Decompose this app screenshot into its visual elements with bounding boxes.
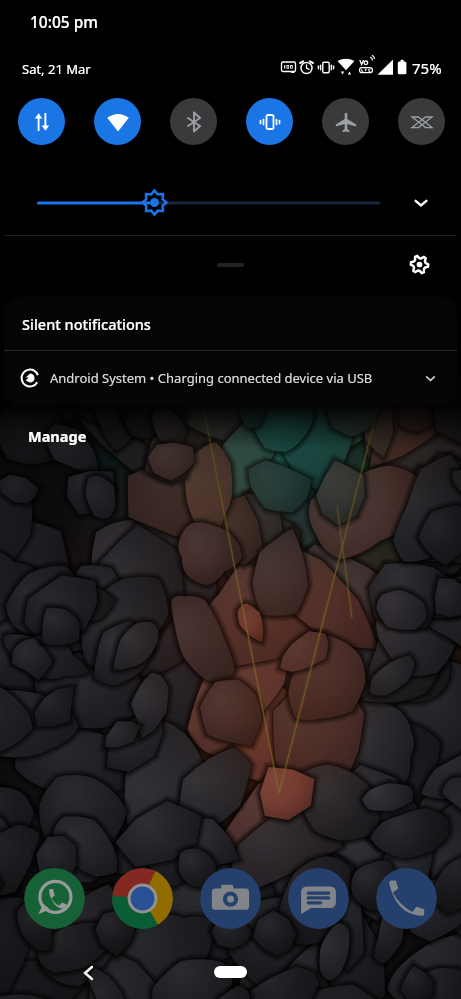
button[interactable]: Expand quick settings — [412, 194, 430, 212]
button[interactable]: Mobile data — [18, 98, 65, 145]
button[interactable]: Brightness — [4, 183, 457, 223]
button[interactable]: Home — [214, 966, 247, 978]
staticText: Sat, 21 Mar — [22, 60, 91, 78]
button[interactable]: Bluetooth — [170, 98, 217, 145]
other: Expand — [424, 372, 437, 385]
staticText: 10:05 pm — [30, 11, 98, 32]
staticText: 75% — [412, 58, 442, 78]
staticText: Silent notifications — [22, 314, 151, 334]
button[interactable]: Phone — [376, 868, 437, 929]
button[interactable]: Camera — [200, 868, 261, 929]
button[interactable]: WhatsApp — [24, 868, 85, 929]
button[interactable]: Airplane mode — [322, 98, 369, 145]
button[interactable]: Screen record — [398, 98, 445, 145]
button[interactable]: Wi-Fi — [94, 98, 141, 145]
button[interactable]: Android System • Charging connected devi… — [4, 351, 457, 405]
button[interactable]: Vibrate — [246, 98, 293, 145]
staticText: Android System • Charging connected devi… — [50, 369, 373, 387]
button[interactable]: Chrome — [112, 868, 173, 929]
button[interactable]: Back — [80, 963, 100, 983]
button[interactable]: Manage — [28, 426, 87, 446]
button[interactable]: Messages — [288, 868, 349, 929]
button[interactable]: Settings — [410, 255, 429, 274]
